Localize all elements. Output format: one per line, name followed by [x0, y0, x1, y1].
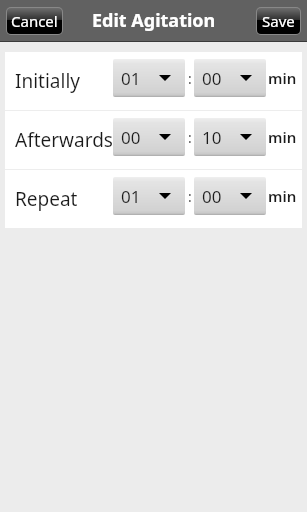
staticText: Afterwards: [15, 127, 113, 153]
staticText: Edit Agitation: [92, 8, 216, 33]
staticText: min: [268, 186, 297, 206]
button[interactable]: 01: [113, 177, 185, 215]
button[interactable]: Afterwards: [5, 111, 302, 169]
staticText: 01: [121, 185, 141, 208]
staticText: 01: [121, 67, 141, 90]
staticText: :: [188, 69, 192, 88]
button[interactable]: 00: [194, 59, 266, 97]
button[interactable]: 00: [194, 177, 266, 215]
button[interactable]: 10: [194, 118, 266, 156]
staticText: 00: [121, 126, 141, 149]
button[interactable]: Cancel: [7, 8, 62, 34]
staticText: 10: [202, 126, 222, 149]
staticText: 00: [202, 185, 222, 208]
staticText: Cancel: [11, 11, 58, 31]
button[interactable]: 00: [113, 118, 185, 156]
staticText: min: [268, 127, 297, 147]
button[interactable]: Initially: [5, 52, 302, 110]
staticText: :: [188, 187, 192, 206]
staticText: Repeat: [15, 186, 78, 212]
staticText: 00: [202, 67, 222, 90]
staticText: Initially: [15, 68, 80, 94]
staticText: min: [268, 68, 297, 88]
button[interactable]: 01: [113, 59, 185, 97]
button[interactable]: Repeat: [5, 170, 302, 228]
button[interactable]: Save: [257, 8, 300, 34]
staticText: Save: [262, 11, 295, 31]
staticText: :: [188, 128, 192, 147]
